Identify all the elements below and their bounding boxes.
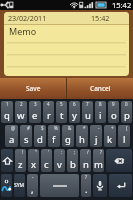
staticText: h	[79, 133, 85, 146]
staticText: o	[111, 109, 117, 122]
staticText: 4	[47, 101, 50, 107]
button[interactable]: 3	[29, 101, 41, 123]
button[interactable]: 23/02/2011	[4, 12, 129, 76]
button[interactable]: ;	[67, 149, 78, 172]
staticText: Memo	[9, 25, 37, 37]
staticText: 1	[6, 101, 9, 107]
staticText: ?	[100, 149, 102, 155]
staticText: m	[94, 158, 103, 171]
button[interactable]: 0	[121, 101, 132, 123]
button[interactable]: #	[20, 125, 32, 147]
staticText: w	[17, 109, 25, 122]
staticText: ;	[74, 149, 76, 155]
button[interactable]: '	[41, 149, 52, 172]
staticText: g	[65, 133, 71, 146]
button[interactable]: -	[27, 174, 38, 197]
staticText: *	[83, 125, 86, 131]
button[interactable]: +	[104, 125, 116, 147]
button[interactable]: 9	[108, 101, 119, 123]
staticText: 3	[34, 101, 37, 107]
staticText: x	[31, 158, 37, 171]
staticText: y	[72, 109, 77, 122]
staticText: #	[27, 125, 30, 131]
staticText: -	[98, 125, 100, 131]
staticText: p	[124, 109, 130, 122]
staticText: $	[41, 125, 44, 131]
button[interactable]: 4	[43, 101, 54, 123]
staticText: !	[22, 149, 24, 155]
staticText: :	[61, 149, 63, 155]
button[interactable]: (	[118, 125, 130, 147]
button[interactable]: Save	[0, 78, 66, 99]
staticText: t	[60, 109, 64, 122]
button[interactable]: @	[5, 125, 18, 147]
button[interactable]: 7	[82, 101, 93, 123]
staticText: 9	[112, 101, 115, 107]
button[interactable]: ?	[93, 149, 104, 172]
staticText: Cancel	[90, 84, 111, 93]
staticText: @	[11, 125, 16, 131]
staticText: Save	[26, 84, 41, 93]
button[interactable]: Shift	[1, 149, 13, 172]
button[interactable]: Backspace	[106, 149, 132, 172]
staticText: +	[111, 125, 114, 131]
staticText: &	[68, 125, 72, 131]
button[interactable]: Keyboard options	[1, 174, 12, 197]
button[interactable]: &	[62, 125, 74, 147]
staticText: i	[99, 109, 102, 122]
button[interactable]: Symbols	[14, 174, 25, 197]
staticText: 7	[86, 101, 89, 107]
button[interactable]: "	[28, 149, 39, 172]
staticText: SYM	[14, 182, 25, 189]
button[interactable]: *	[76, 125, 88, 147]
staticText: j	[95, 133, 98, 146]
staticText: f	[52, 133, 56, 146]
staticText: 5	[60, 101, 63, 107]
staticText: 6	[73, 101, 76, 107]
staticText: v	[57, 158, 62, 171]
staticText: "	[35, 149, 37, 155]
button[interactable]: 2	[15, 101, 27, 123]
staticText: b	[70, 158, 76, 171]
button[interactable]: Cancel	[67, 78, 133, 99]
staticText: 15:42	[91, 13, 110, 23]
staticText: .	[85, 183, 88, 196]
staticText: 0	[125, 101, 128, 107]
button[interactable]: 6	[69, 101, 80, 123]
staticText: c	[44, 158, 49, 171]
staticText: /	[87, 149, 89, 155]
button[interactable]: Enter	[109, 174, 132, 197]
staticText: u	[85, 109, 91, 122]
button[interactable]: ?	[81, 174, 91, 197]
staticText: %	[54, 125, 58, 131]
staticText: ?	[85, 174, 87, 180]
button[interactable]: /	[80, 149, 91, 172]
staticText: 2	[20, 101, 23, 107]
button[interactable]: !	[15, 149, 26, 172]
staticText: r	[47, 109, 51, 122]
staticText: '	[48, 149, 50, 155]
staticText: -	[32, 174, 34, 180]
button[interactable]: :	[54, 149, 65, 172]
staticText: n	[83, 158, 89, 171]
button[interactable]: 1	[1, 101, 13, 123]
button[interactable]: Voice input	[93, 174, 107, 197]
staticText: s	[24, 133, 29, 146]
staticText: e	[32, 109, 38, 122]
button[interactable]: 8	[95, 101, 106, 123]
staticText: a	[9, 133, 15, 146]
staticText: 8	[99, 101, 102, 107]
staticText: l	[123, 133, 126, 146]
staticText: 15:42	[112, 0, 132, 10]
staticText: d	[37, 133, 43, 146]
button[interactable]: -	[90, 125, 102, 147]
button[interactable]: $	[34, 125, 46, 147]
staticText: 23/02/2011	[8, 13, 47, 23]
button[interactable]: 5	[56, 101, 67, 123]
staticText: k	[107, 133, 113, 146]
button[interactable]: %	[48, 125, 60, 147]
button[interactable]: Space	[40, 174, 79, 197]
staticText: ,	[31, 183, 34, 196]
staticText: (	[126, 125, 128, 131]
staticText: q	[4, 109, 10, 122]
